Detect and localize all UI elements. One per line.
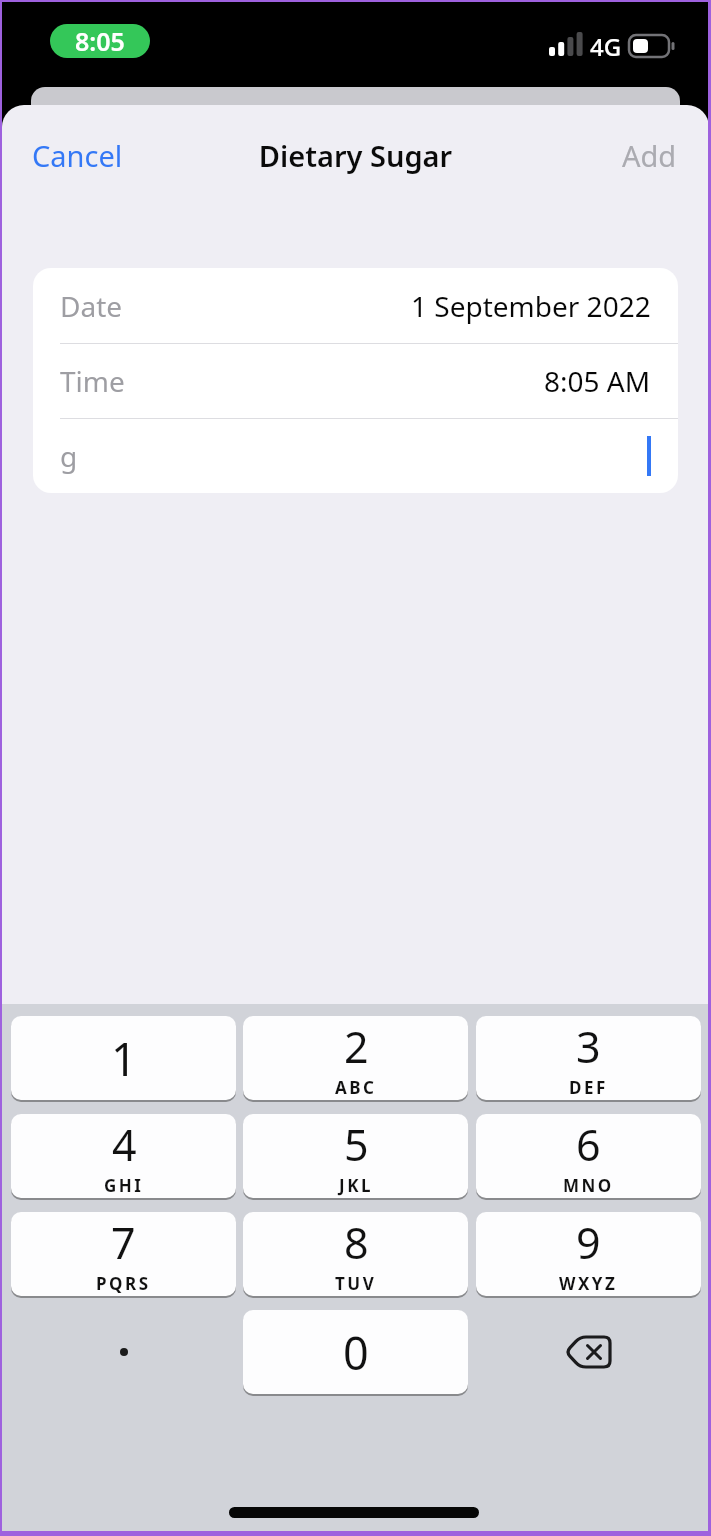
staticText: Time	[60, 362, 125, 400]
staticText: 3	[576, 1017, 601, 1076]
staticText: WXYZ	[559, 1272, 618, 1295]
button[interactable]: 4	[11, 1114, 236, 1198]
button[interactable]: 7	[11, 1212, 236, 1296]
staticText: PQRS	[96, 1272, 151, 1295]
staticText: TUV	[335, 1272, 377, 1295]
staticText: 9	[576, 1213, 601, 1272]
staticText: 5	[344, 1115, 369, 1174]
button[interactable]: 1	[11, 1016, 236, 1100]
staticText: 8:05	[75, 24, 125, 58]
button[interactable]: 2	[243, 1016, 468, 1100]
button[interactable]: 0	[243, 1310, 468, 1394]
button[interactable]: Cancel	[32, 136, 123, 175]
button[interactable]: g	[60, 419, 651, 493]
button[interactable]: Add	[622, 136, 677, 175]
staticText: GHI	[104, 1174, 144, 1197]
button[interactable]: 5	[243, 1114, 468, 1198]
staticText: ABC	[335, 1076, 377, 1099]
staticText: Dietary Sugar	[2, 136, 709, 175]
button[interactable]: 3	[476, 1016, 701, 1100]
staticText: MNO	[563, 1174, 614, 1197]
staticText: 7	[111, 1213, 136, 1272]
button[interactable]	[11, 1310, 236, 1394]
button[interactable]: 9	[476, 1212, 701, 1296]
button[interactable]: Time	[60, 344, 651, 418]
staticText: 8	[344, 1213, 369, 1272]
staticText: DEF	[569, 1076, 608, 1099]
button[interactable]: 6	[476, 1114, 701, 1198]
staticText: Date	[60, 287, 123, 325]
staticText: 1	[111, 1028, 137, 1089]
button[interactable]	[476, 1310, 701, 1394]
staticText: JKL	[339, 1174, 373, 1197]
staticText: 0	[343, 1322, 369, 1383]
staticText: 4	[112, 1115, 137, 1174]
staticText: 2	[344, 1017, 369, 1076]
staticText: 4G	[590, 30, 622, 63]
staticText: Add	[622, 136, 677, 175]
button[interactable]: 8	[243, 1212, 468, 1296]
staticText: 6	[576, 1115, 601, 1174]
button[interactable]: 8:05	[50, 24, 150, 58]
staticText: g	[60, 437, 78, 475]
staticText: Cancel	[32, 136, 123, 175]
button[interactable]: Date	[60, 268, 651, 343]
staticText: 8:05 AM	[544, 362, 651, 400]
staticText: 1 September 2022	[411, 287, 651, 325]
